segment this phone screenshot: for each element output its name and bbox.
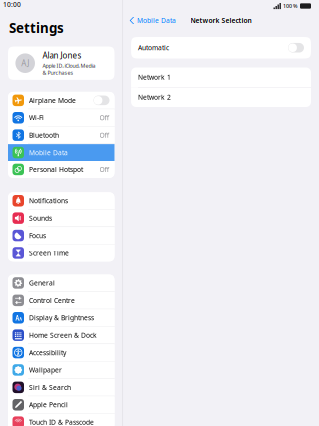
staticText: Accessibility: [29, 348, 66, 357]
staticText: Home Screen & Dock: [29, 331, 97, 340]
button[interactable]: Notifications: [8, 192, 114, 209]
staticText: Display & Brightness: [29, 313, 94, 322]
staticText: & Purchases: [42, 69, 73, 76]
button[interactable]: Touch ID & Passcode: [8, 414, 114, 426]
staticText: Settings: [9, 19, 64, 37]
staticText: Mobile Data: [137, 16, 176, 25]
button[interactable]: Wallpaper: [8, 361, 114, 378]
staticText: General: [29, 278, 55, 287]
staticText: Mobile Data: [29, 148, 68, 157]
staticText: Sounds: [29, 214, 52, 223]
button[interactable]: Accessibility: [8, 344, 114, 361]
button[interactable]: Apple Pencil: [8, 396, 114, 413]
button[interactable]: Airplane Mode: [8, 92, 114, 109]
button[interactable]: Network 2: [131, 87, 311, 107]
staticText: Screen Time: [29, 248, 69, 257]
button[interactable]: Personal Hotspot: [8, 161, 114, 178]
staticText: Focus: [29, 231, 46, 240]
staticText: Automatic: [138, 43, 169, 52]
staticText: Network 1: [138, 73, 171, 82]
button[interactable]: Mobile Data: [8, 144, 114, 161]
staticText: Notifications: [29, 196, 68, 205]
staticText: AJ: [21, 58, 29, 68]
button[interactable]: Mobile Data: [123, 16, 176, 25]
staticText: Apple Pencil: [29, 400, 68, 409]
staticText: Personal Hotspot: [29, 165, 83, 174]
staticText: Touch ID & Passcode: [29, 418, 94, 426]
staticText: Network Selection: [190, 16, 251, 25]
staticText: Wi-Fi: [29, 113, 44, 122]
button[interactable]: Network 1: [131, 67, 311, 87]
button[interactable]: Bluetooth: [8, 127, 114, 144]
button[interactable]: Control Centre: [8, 292, 114, 309]
staticText: 10:00: [3, 0, 21, 9]
button[interactable]: Home Screen & Dock: [8, 327, 114, 344]
button[interactable]: Sounds: [8, 210, 114, 227]
button[interactable]: Automatic: [131, 37, 311, 58]
staticText: Siri & Search: [29, 383, 71, 392]
staticText: Off: [99, 113, 109, 122]
staticText: Control Centre: [29, 296, 75, 305]
button[interactable]: Screen Time: [8, 244, 114, 261]
staticText: Wallpaper: [29, 365, 62, 374]
staticText: Off: [99, 131, 109, 140]
staticText: Bluetooth: [29, 131, 59, 140]
button[interactable]: Wi-Fi: [8, 109, 114, 126]
staticText: Alan Jones: [42, 50, 81, 61]
staticText: Off: [99, 165, 109, 174]
button[interactable]: Siri & Search: [8, 379, 114, 396]
staticText: Network 2: [138, 93, 171, 102]
button[interactable]: Focus: [8, 227, 114, 244]
staticText: Airplane Mode: [29, 96, 76, 105]
staticText: Apple ID, iCloud, Media: [42, 62, 95, 69]
button[interactable]: AJ: [8, 46, 114, 80]
button[interactable]: Display & Brightness: [8, 309, 114, 326]
button[interactable]: General: [8, 274, 114, 291]
staticText: 100 %: [283, 2, 298, 10]
